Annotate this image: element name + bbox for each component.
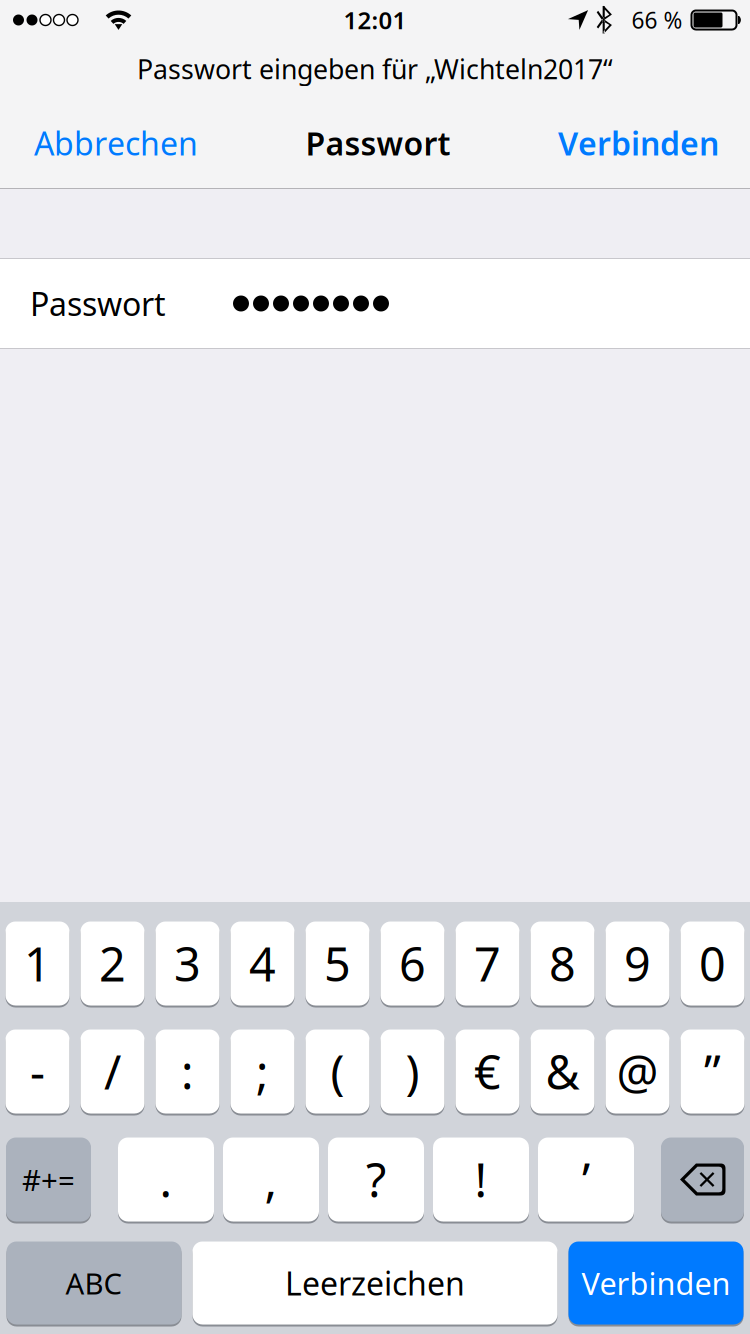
staticText: 2: [99, 932, 126, 994]
staticText: Verbinden: [558, 122, 719, 164]
button[interactable]: ;: [230, 1029, 294, 1115]
button[interactable]: #+=: [6, 1137, 91, 1223]
button[interactable]: /: [80, 1029, 144, 1115]
button[interactable]: 3: [155, 921, 219, 1007]
staticText: 12:01: [343, 4, 406, 36]
button[interactable]: (: [305, 1029, 369, 1115]
button[interactable]: 9: [605, 921, 669, 1007]
staticText: ”: [704, 1040, 721, 1102]
staticText: €: [474, 1040, 501, 1102]
button[interactable]: Löschen: [661, 1137, 744, 1223]
button[interactable]: ?: [328, 1137, 424, 1223]
staticText: ?: [366, 1148, 386, 1210]
staticText: (: [330, 1040, 344, 1102]
staticText: -: [30, 1040, 45, 1102]
staticText: Passwort eingeben für „Wichteln2017“: [137, 51, 613, 87]
staticText: Abbrechen: [34, 122, 198, 164]
button[interactable]: ): [380, 1029, 444, 1115]
staticText: ): [405, 1040, 419, 1102]
button[interactable]: 5: [305, 921, 369, 1007]
staticText: Verbinden: [581, 1263, 730, 1303]
staticText: Passwort: [30, 282, 166, 325]
staticText: Leerzeichen: [285, 1262, 465, 1304]
button[interactable]: :: [155, 1029, 219, 1115]
button[interactable]: 4: [230, 921, 294, 1007]
button[interactable]: 6: [380, 921, 444, 1007]
button[interactable]: -: [5, 1029, 69, 1115]
staticText: :: [181, 1040, 194, 1102]
button[interactable]: ,: [223, 1137, 319, 1223]
staticText: !: [474, 1148, 487, 1210]
button[interactable]: 2: [80, 921, 144, 1007]
button[interactable]: €: [455, 1029, 519, 1115]
staticText: ’: [582, 1148, 590, 1210]
staticText: &: [545, 1040, 579, 1102]
button[interactable]: Abbrechen: [0, 98, 220, 188]
button[interactable]: .: [118, 1137, 214, 1223]
button[interactable]: &: [530, 1029, 594, 1115]
button[interactable]: 1: [5, 921, 69, 1007]
staticText: 1: [24, 932, 51, 994]
staticText: 5: [324, 932, 351, 994]
button[interactable]: 0: [680, 921, 744, 1007]
button[interactable]: @: [605, 1029, 669, 1115]
staticText: 66 %: [631, 5, 682, 35]
staticText: ABC: [65, 1263, 122, 1302]
staticText: ;: [256, 1040, 269, 1102]
staticText: 0: [699, 932, 726, 994]
staticText: .: [159, 1148, 172, 1210]
button[interactable]: Passwort: [0, 259, 750, 348]
button[interactable]: 8: [530, 921, 594, 1007]
staticText: Passwort: [305, 122, 450, 164]
staticText: #+=: [22, 1160, 75, 1199]
staticText: ,: [264, 1148, 277, 1210]
staticText: 6: [399, 932, 426, 994]
staticText: @: [616, 1040, 658, 1102]
button[interactable]: ”: [680, 1029, 744, 1115]
staticText: 8: [549, 932, 576, 994]
button[interactable]: Leerzeichen: [192, 1241, 557, 1326]
button[interactable]: Verbinden: [536, 98, 750, 188]
button[interactable]: ABC: [6, 1241, 181, 1326]
staticText: 9: [624, 932, 651, 994]
staticText: 7: [474, 932, 501, 994]
staticText: 4: [249, 932, 276, 994]
button[interactable]: 7: [455, 921, 519, 1007]
button[interactable]: ’: [538, 1137, 634, 1223]
button[interactable]: !: [433, 1137, 529, 1223]
button[interactable]: Verbinden: [568, 1241, 743, 1326]
staticText: 3: [174, 932, 201, 994]
staticText: /: [104, 1040, 121, 1102]
